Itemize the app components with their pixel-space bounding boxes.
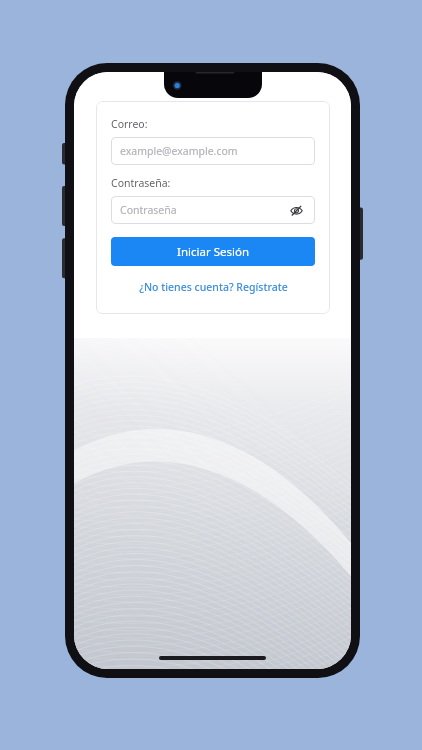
button[interactable]: Iniciar Sesión xyxy=(111,237,315,266)
staticText: Correo: xyxy=(111,117,148,131)
button[interactable]: example@example.com xyxy=(111,137,315,165)
button[interactable]: Contraseña xyxy=(111,196,315,224)
staticText: ¿No tienes cuenta? Regístrate xyxy=(139,280,288,294)
staticText: Contraseña xyxy=(120,203,286,217)
staticText: example@example.com xyxy=(120,144,306,158)
staticText: Contraseña: xyxy=(111,176,171,190)
staticText: Iniciar Sesión xyxy=(177,244,249,260)
button[interactable]: Mostrar contraseña xyxy=(286,200,306,220)
button[interactable]: ¿No tienes cuenta? Regístrate xyxy=(111,278,315,296)
